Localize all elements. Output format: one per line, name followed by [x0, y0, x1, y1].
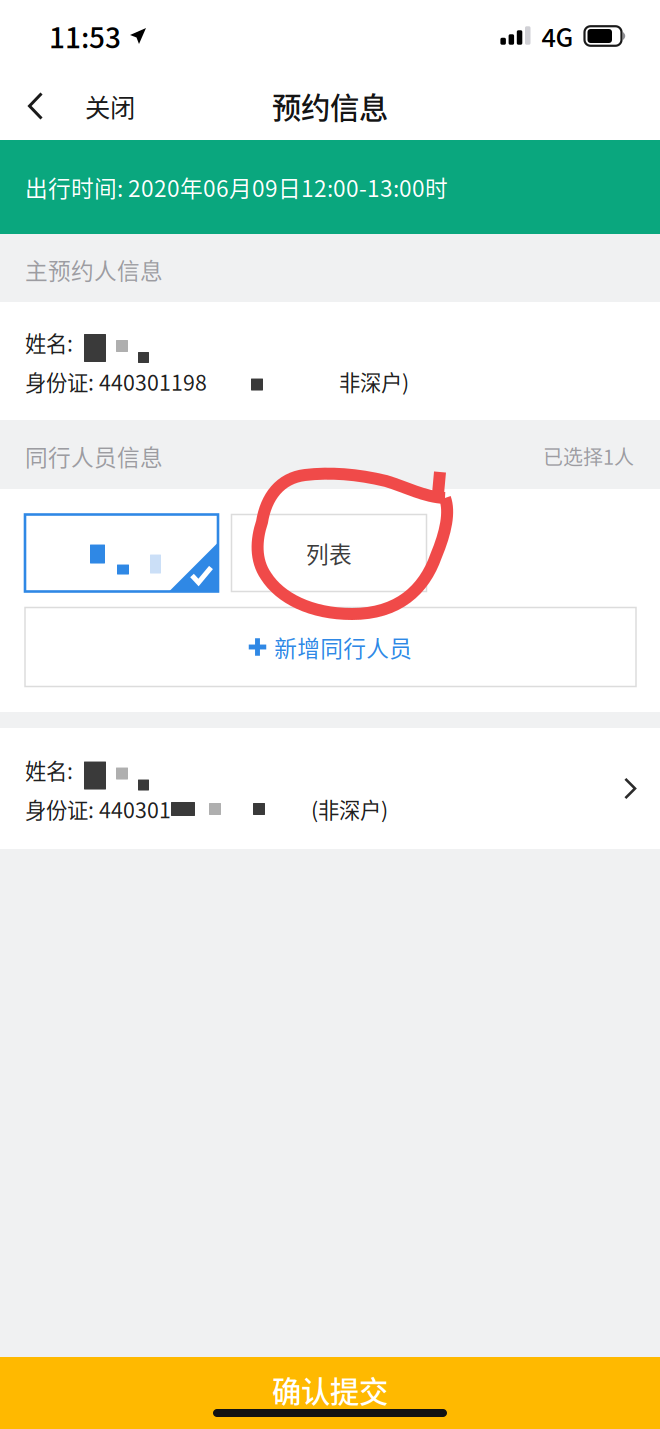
button[interactable]: 新增同行人员: [25, 607, 636, 686]
staticText: 身份证: 440301: [25, 794, 171, 824]
button[interactable]: 确认提交: [0, 1357, 660, 1429]
staticText: 身份证: 440301198: [25, 366, 207, 397]
staticText: 4G: [541, 18, 573, 54]
staticText: 预约信息: [272, 85, 388, 127]
staticText: 已选择1人: [543, 441, 634, 470]
staticText: 列表: [306, 537, 352, 569]
staticText: 姓名:: [25, 327, 73, 358]
button[interactable]: [25, 514, 218, 591]
button[interactable]: 关闭: [0, 73, 157, 139]
staticText: 新增同行人员: [274, 631, 412, 663]
staticText: 姓名:: [25, 754, 73, 785]
staticText: (非深户): [311, 794, 388, 824]
staticText: 出行时间: 2020年06月09日12:00-13:00时: [25, 171, 448, 203]
staticText: 确认提交: [272, 1368, 388, 1411]
staticText: 同行人员信息: [25, 440, 163, 472]
staticText: 主预约人信息: [25, 253, 163, 286]
button[interactable]: 姓名:: [0, 728, 660, 849]
button[interactable]: 列表: [231, 514, 426, 591]
staticText: 11:53: [49, 16, 121, 56]
staticText: 关闭: [85, 88, 135, 124]
staticText: 非深户): [339, 366, 409, 397]
